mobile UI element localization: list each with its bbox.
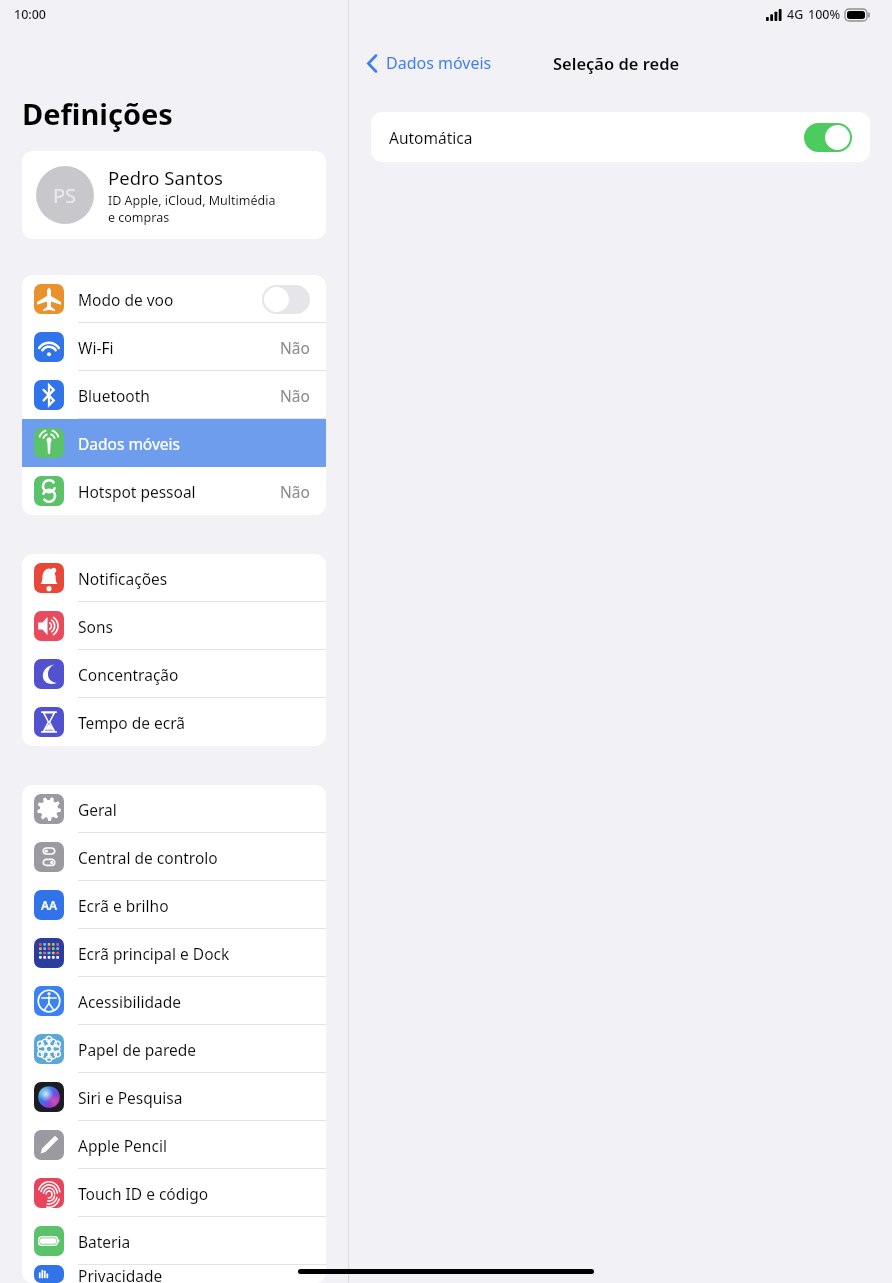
staticText: PS: [53, 182, 77, 209]
staticText: Bateria: [78, 1231, 310, 1252]
staticText: Dados móveis: [78, 433, 310, 454]
button[interactable]: Ecrã principal e Dock: [22, 929, 326, 977]
staticText: Concentração: [78, 664, 310, 685]
staticText: Não: [280, 385, 310, 406]
button[interactable]: PS: [22, 151, 326, 239]
button[interactable]: Hotspot pessoal: [22, 467, 326, 515]
button[interactable]: Bluetooth: [22, 371, 326, 419]
button[interactable]: Apple Pencil: [22, 1121, 326, 1169]
staticText: Pedro Santos: [108, 165, 223, 190]
staticText: Apple Pencil: [78, 1135, 310, 1156]
staticText: Papel de parede: [78, 1039, 310, 1060]
button[interactable]: Dados móveis: [363, 48, 496, 78]
button[interactable]: Geral: [22, 785, 326, 833]
button[interactable]: Papel de parede: [22, 1025, 326, 1073]
staticText: 100%: [808, 6, 841, 23]
button[interactable]: Bateria: [22, 1217, 326, 1265]
staticText: Não: [280, 481, 310, 502]
staticText: Siri e Pesquisa: [78, 1087, 310, 1108]
button[interactable]: Wi-Fi: [22, 323, 326, 371]
button[interactable]: Modo de voo: [22, 275, 326, 323]
button[interactable]: Automática: [371, 112, 870, 162]
staticText: Sons: [78, 616, 310, 637]
staticText: Acessibilidade: [78, 991, 310, 1012]
staticText: Hotspot pessoal: [78, 481, 280, 502]
button[interactable]: AA: [22, 881, 326, 929]
button[interactable]: Sons: [22, 602, 326, 650]
button[interactable]: Notificações: [22, 554, 326, 602]
staticText: Tempo de ecrã: [78, 712, 310, 733]
staticText: 10:00: [14, 6, 47, 23]
staticText: Não: [280, 337, 310, 358]
button[interactable]: Central de controlo: [22, 833, 326, 881]
button[interactable]: Desativado: [262, 285, 310, 314]
staticText: AA: [41, 897, 58, 913]
staticText: Wi-Fi: [78, 337, 280, 358]
button[interactable]: Dados móveis: [22, 419, 326, 467]
staticText: Geral: [78, 799, 310, 820]
button[interactable]: Concentração: [22, 650, 326, 698]
button[interactable]: Touch ID e código: [22, 1169, 326, 1217]
staticText: Central de controlo: [78, 847, 310, 868]
button[interactable]: Ativado: [804, 123, 852, 152]
staticText: Notificações: [78, 568, 310, 589]
staticText: Ecrã principal e Dock: [78, 943, 310, 964]
button[interactable]: Acessibilidade: [22, 977, 326, 1025]
staticText: 4G: [787, 6, 804, 23]
staticText: Privacidade: [78, 1265, 310, 1283]
button[interactable]: Tempo de ecrã: [22, 698, 326, 746]
staticText: Modo de voo: [78, 289, 262, 310]
staticText: Bluetooth: [78, 385, 280, 406]
staticText: Definições: [22, 94, 173, 133]
button[interactable]: Privacidade: [22, 1265, 326, 1283]
staticText: Dados móveis: [386, 52, 492, 74]
staticText: Automática: [389, 127, 804, 148]
staticText: Ecrã e brilho: [78, 895, 310, 916]
staticText: ID Apple, iCloud, Multimédia e compras: [108, 192, 276, 225]
button[interactable]: Siri e Pesquisa: [22, 1073, 326, 1121]
staticText: Touch ID e código: [78, 1183, 310, 1204]
staticText: Seleção de rede: [553, 52, 680, 74]
